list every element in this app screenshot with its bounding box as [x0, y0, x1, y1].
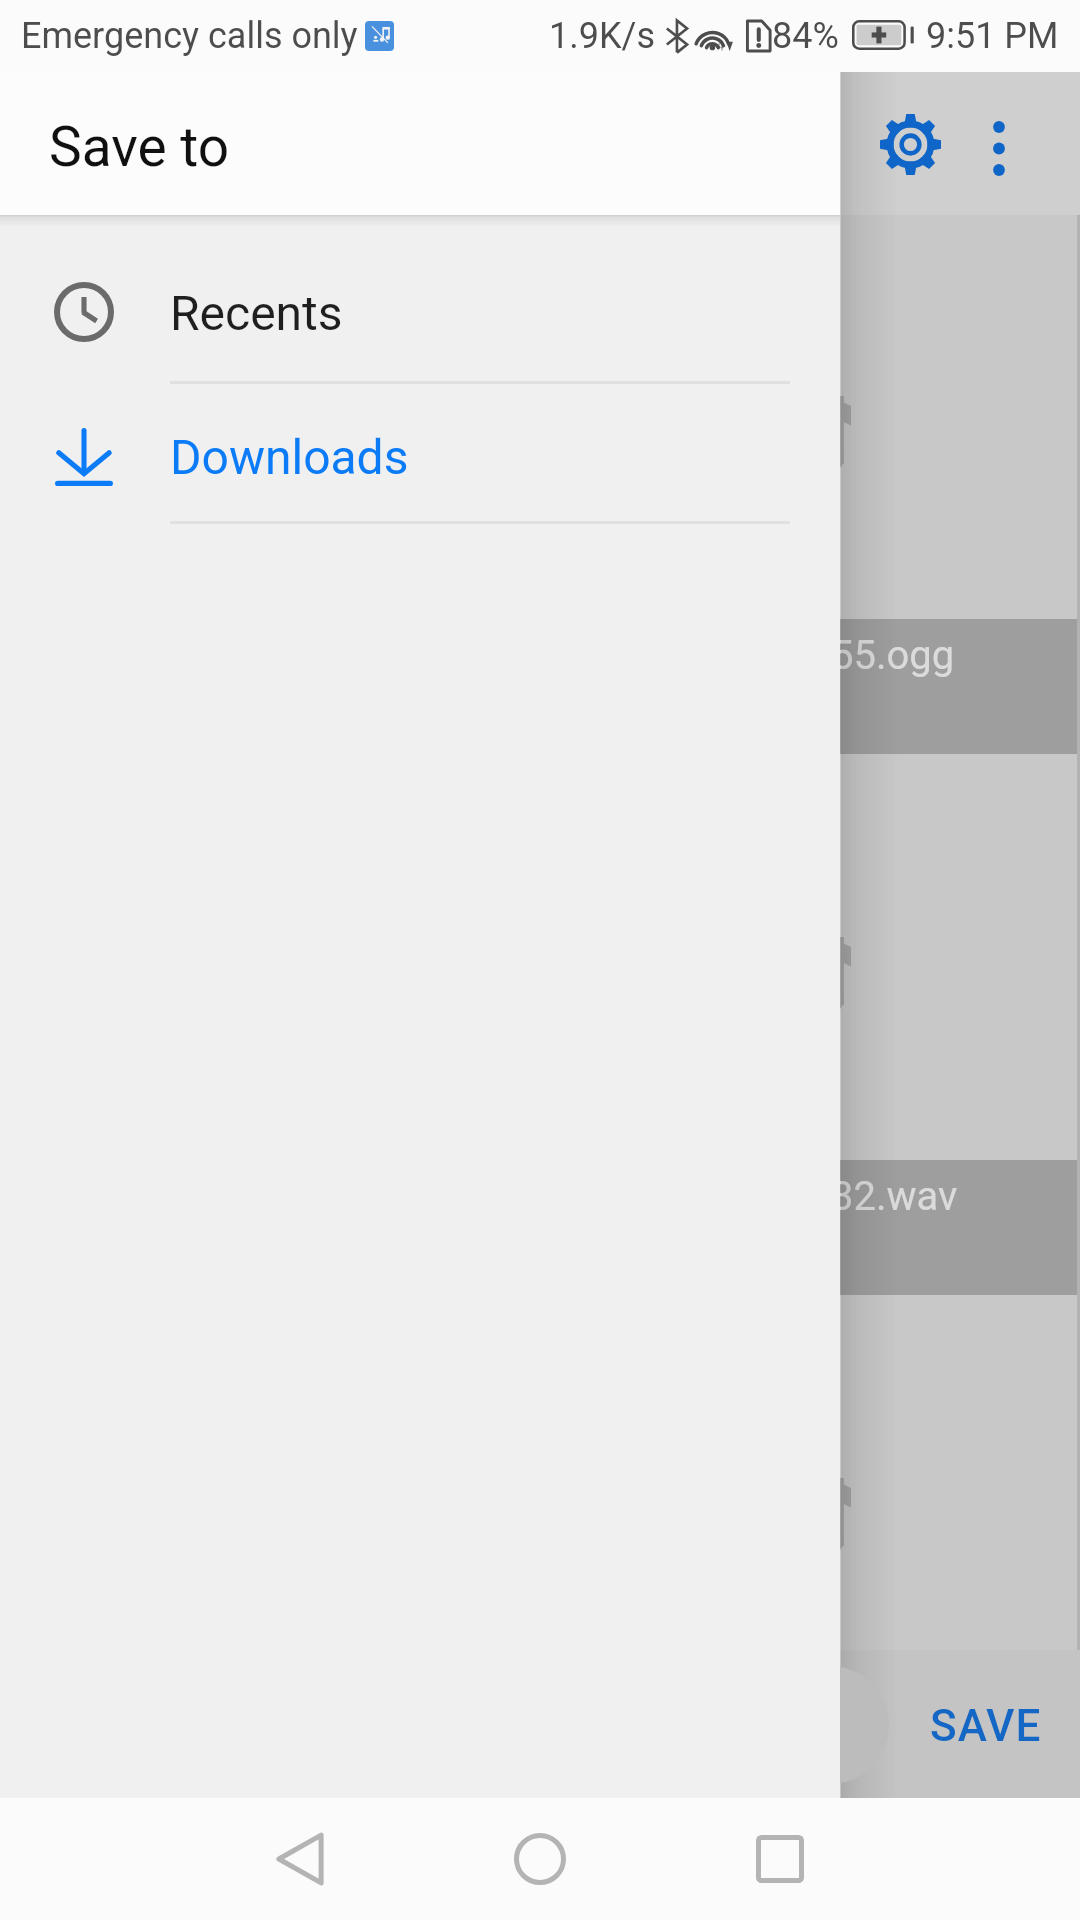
button[interactable]: Recents: [0, 237, 840, 380]
button[interactable]: Back: [180, 1798, 420, 1920]
button[interactable]: More options: [939, 73, 1035, 217]
button[interactable]: Recents: [660, 1798, 900, 1920]
button[interactable]: SAVE: [930, 1700, 1042, 1752]
button[interactable]: Home: [420, 1798, 660, 1920]
staticText: 1.9K/s: [549, 15, 655, 57]
staticText: Recents: [170, 285, 343, 341]
staticText: 84%: [772, 15, 839, 57]
staticText: 32.wav: [831, 1173, 958, 1220]
staticText: Downloads: [170, 429, 409, 485]
button[interactable]: Downloads: [0, 381, 840, 524]
staticText: Save to: [49, 115, 230, 179]
staticText: 9:51 PM: [926, 15, 1059, 57]
staticText: 55.ogg: [831, 632, 955, 679]
staticText: Emergency calls only: [21, 15, 358, 57]
button[interactable]: Settings: [837, 73, 981, 217]
staticText: SAVE: [930, 1700, 1042, 1752]
